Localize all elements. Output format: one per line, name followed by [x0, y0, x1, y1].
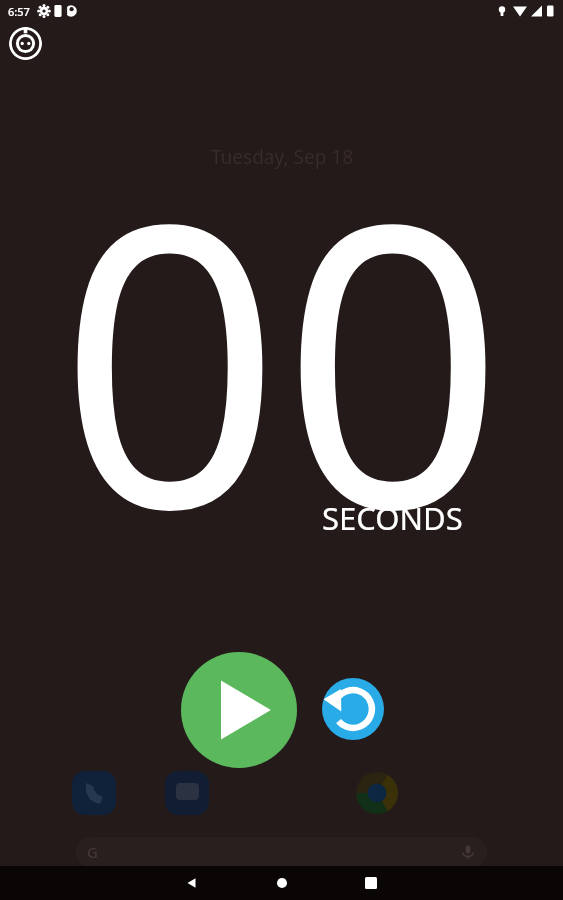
button[interactable]: Reset [322, 678, 384, 740]
button[interactable]: G [76, 837, 487, 867]
button[interactable]: Recent apps [349, 866, 393, 900]
staticText: Tuesday, Sep 18 [211, 144, 353, 170]
button[interactable]: Back [170, 866, 214, 900]
staticText: SECONDS [322, 497, 463, 539]
staticText: G [87, 842, 98, 862]
button[interactable]: Stopwatch [9, 27, 42, 60]
button[interactable]: Home [260, 866, 304, 900]
staticText: 6:57 [8, 4, 30, 19]
staticText: 00 [58, 90, 505, 621]
button[interactable]: Start [181, 652, 297, 768]
